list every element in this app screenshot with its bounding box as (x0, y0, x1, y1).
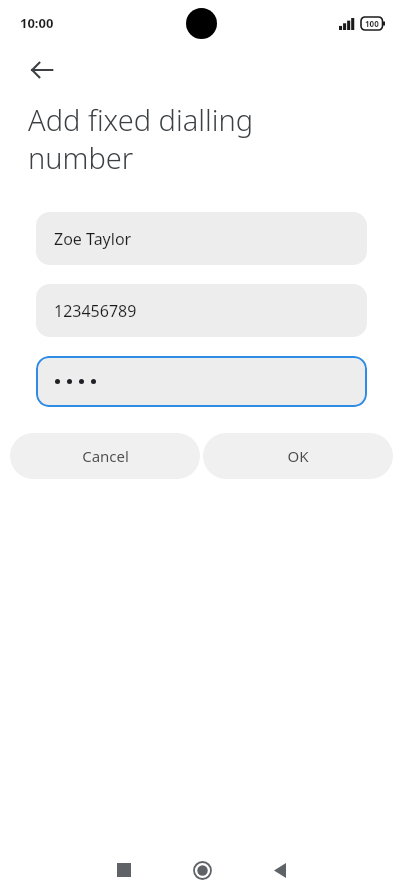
button[interactable]: Recent apps (85, 846, 163, 894)
button[interactable]: Home (163, 846, 241, 894)
button[interactable] (36, 356, 367, 407)
button[interactable]: Back (241, 846, 319, 894)
staticText: 10:00 (20, 14, 54, 32)
staticText: Cancel (82, 446, 129, 466)
staticText: OK (287, 446, 309, 466)
staticText: Add fixed dialling number (28, 100, 254, 177)
staticText: 123456789 (54, 300, 137, 322)
button[interactable]: Back (22, 50, 62, 90)
button[interactable]: Cancel (10, 433, 200, 479)
button[interactable]: 123456789 (36, 284, 367, 337)
staticText: Zoe Taylor (54, 228, 132, 250)
staticText: 100 (365, 18, 379, 29)
button[interactable]: OK (203, 433, 393, 479)
button[interactable]: Zoe Taylor (36, 212, 367, 265)
